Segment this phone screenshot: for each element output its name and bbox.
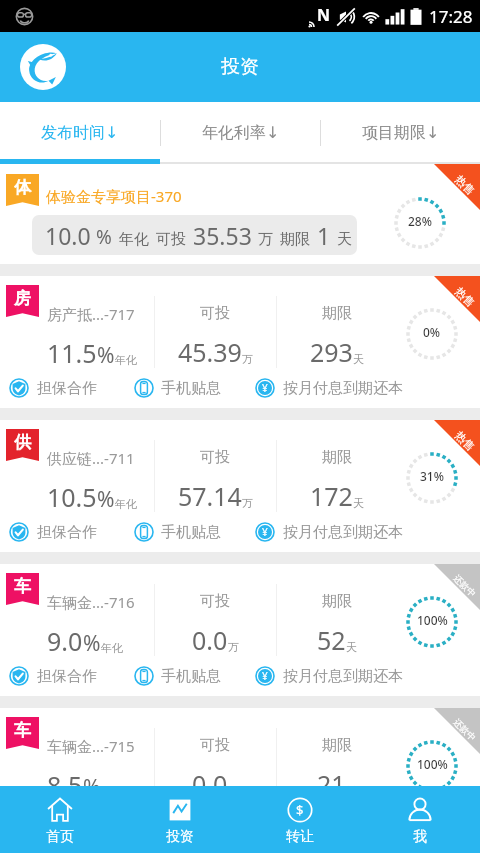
staticText: 万	[228, 784, 239, 798]
staticText: 担保合作	[37, 667, 97, 686]
staticText: 期限	[322, 592, 352, 611]
staticText: 热售	[452, 284, 478, 310]
staticText: 车辆金...-715	[47, 736, 135, 756]
staticText: 担保合作	[37, 523, 97, 542]
staticText: 57.14	[178, 479, 242, 513]
staticText: N	[317, 4, 331, 26]
staticText: 万	[228, 640, 239, 654]
button[interactable]: 房	[0, 276, 480, 408]
staticText: ¥	[262, 381, 268, 395]
staticText: 52	[317, 623, 346, 657]
staticText: 投资	[221, 55, 259, 79]
staticText: 手机贴息	[161, 811, 221, 830]
staticText: 28%	[408, 213, 432, 229]
staticText: 供应链...-711	[47, 448, 135, 468]
button[interactable]: 车	[0, 708, 480, 786]
staticText: 车	[14, 576, 31, 597]
staticText: 期限	[280, 230, 310, 249]
staticText: 可投	[200, 448, 230, 467]
staticText: 天	[353, 496, 364, 510]
button[interactable]: 首页	[0, 786, 120, 853]
staticText: $	[296, 801, 304, 819]
button[interactable]: 供	[0, 420, 480, 552]
button[interactable]: 车	[0, 564, 480, 696]
staticText: 0.0	[192, 623, 228, 657]
staticText: ¥	[262, 525, 268, 539]
staticText: 按月付息到期还本	[283, 379, 403, 398]
staticText: 天	[353, 352, 364, 366]
staticText: 可投	[156, 230, 186, 249]
staticText: 万	[258, 230, 273, 249]
staticText: 年化	[101, 785, 123, 799]
staticText: 担保合作	[37, 379, 97, 398]
staticText: %	[83, 629, 101, 658]
staticText: 转让	[286, 828, 314, 846]
staticText: 车辆金...-716	[47, 592, 135, 612]
staticText: 年化	[115, 497, 137, 511]
staticText: 担保合作	[37, 811, 97, 830]
button[interactable]: 项目期限↓	[321, 102, 480, 164]
staticText: %	[97, 485, 115, 514]
button[interactable]: 投资	[120, 786, 240, 853]
staticText: 可投	[200, 304, 230, 323]
button[interactable]: 我	[360, 786, 480, 853]
staticText: %	[96, 224, 112, 250]
button[interactable]: 年化利率↓	[161, 102, 320, 164]
staticText: 车	[14, 720, 31, 741]
staticText: 11.5	[47, 336, 97, 370]
staticText: 0%	[423, 324, 441, 340]
staticText: 天	[346, 784, 357, 798]
staticText: %	[97, 341, 115, 370]
staticText: 手机贴息	[161, 523, 221, 542]
staticText: 35.53	[193, 220, 252, 251]
staticText: 期限	[322, 304, 352, 323]
staticText: 手机贴息	[161, 667, 221, 686]
staticText: 21	[317, 767, 346, 801]
staticText: 293	[310, 335, 353, 369]
staticText: 供	[14, 432, 31, 453]
staticText: 我	[413, 828, 427, 846]
staticText: 0.0	[192, 767, 228, 801]
button[interactable]: 发布时间↓	[0, 102, 160, 164]
staticText: 还款中	[452, 572, 478, 599]
staticText: ¥	[262, 669, 268, 683]
staticText: 体	[14, 177, 31, 198]
staticText: 17:28	[429, 5, 473, 28]
staticText: 1	[317, 220, 331, 251]
staticText: 100%	[417, 756, 448, 772]
staticText: 可投	[200, 736, 230, 755]
button[interactable]: $	[240, 786, 360, 853]
staticText: 天	[346, 640, 357, 654]
staticText: 9.0	[47, 624, 83, 658]
staticText: 发布时间↓	[41, 123, 119, 143]
staticText: 8.5	[47, 768, 83, 802]
staticText: 100%	[417, 612, 448, 628]
staticText: 投资	[166, 828, 194, 846]
staticText: 手机贴息	[161, 379, 221, 398]
button[interactable]: Home logo	[20, 44, 66, 90]
staticText: 万	[242, 496, 253, 510]
staticText: 按月付息到期还本	[283, 667, 403, 686]
staticText: 172	[310, 479, 353, 513]
staticText: 按月付息到期还本	[283, 523, 403, 542]
staticText: 项目期限↓	[362, 123, 440, 143]
staticText: 期限	[322, 736, 352, 755]
staticText: 可投	[200, 592, 230, 611]
staticText: 年化	[115, 353, 137, 367]
staticText: 万	[242, 352, 253, 366]
staticText: 31%	[420, 468, 444, 484]
staticText: 年化利率↓	[202, 123, 280, 143]
staticText: 还款中	[452, 716, 478, 743]
staticText: 天	[337, 230, 352, 249]
staticText: 按月付息到期还本	[283, 811, 403, 830]
staticText: 期限	[322, 448, 352, 467]
staticText: 热售	[452, 428, 478, 454]
staticText: 年化	[119, 230, 149, 249]
button[interactable]: 体	[0, 164, 480, 264]
staticText: 热售	[452, 172, 478, 198]
staticText: 10.5	[47, 480, 97, 514]
staticText: 10.0	[45, 220, 91, 251]
staticText: 45.39	[178, 335, 242, 369]
staticText: %	[83, 773, 101, 802]
